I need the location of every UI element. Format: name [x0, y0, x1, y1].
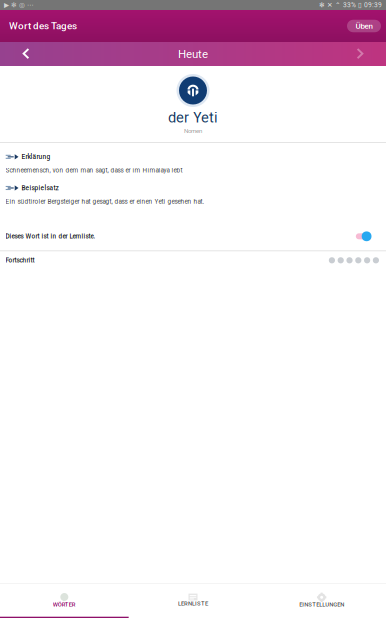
button[interactable]: der Yeti — [0, 66, 386, 142]
button[interactable]: EINSTELLUNGEN — [257, 584, 386, 618]
staticText: Ein südtiroler Bergsteiger hat gesagt, d… — [5, 198, 204, 205]
staticText: Schneemensch, von dem man sagt, dass er … — [5, 167, 182, 174]
button[interactable]: Dieses Wort ist in der Lernliste. — [0, 222, 386, 250]
staticText: ▶ ✻ ◎ ⋯ — [4, 1, 34, 9]
staticText: Üben — [355, 21, 372, 31]
button[interactable]: LERNLISTE — [129, 584, 257, 618]
staticText: Beispielsatz — [21, 184, 58, 192]
staticText: ✻ ✕ ⌃ 33% ▯ 09:39 — [319, 1, 382, 9]
staticText: LERNLISTE — [178, 600, 208, 607]
staticText: Fortschritt — [5, 257, 34, 264]
button[interactable]: WÖRTER — [0, 584, 129, 618]
staticText: der Yeti — [168, 109, 218, 126]
staticText: Wort des Tages — [9, 20, 77, 32]
staticText: Nomen — [184, 127, 202, 134]
staticText: Heute — [178, 47, 208, 61]
staticText: Dieses Wort ist in der Lernliste. — [5, 233, 95, 240]
button[interactable]: Üben — [347, 20, 381, 32]
staticText: EINSTELLUNGEN — [299, 601, 344, 608]
staticText: Erklärung — [21, 153, 50, 161]
button[interactable]: Nächster Tag — [334, 42, 386, 66]
staticText: WÖRTER — [53, 601, 76, 608]
button[interactable]: Vorheriger Tag — [0, 42, 52, 66]
